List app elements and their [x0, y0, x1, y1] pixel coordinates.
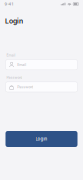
staticText: Password [6, 75, 22, 80]
staticText: Email [6, 53, 15, 57]
button[interactable]: Login [5, 131, 77, 147]
staticText: Password [17, 85, 33, 89]
staticText: Login [5, 17, 23, 25]
staticText: 9:41 [4, 2, 13, 6]
staticText: Email [17, 62, 26, 67]
staticText: Login [35, 136, 47, 142]
